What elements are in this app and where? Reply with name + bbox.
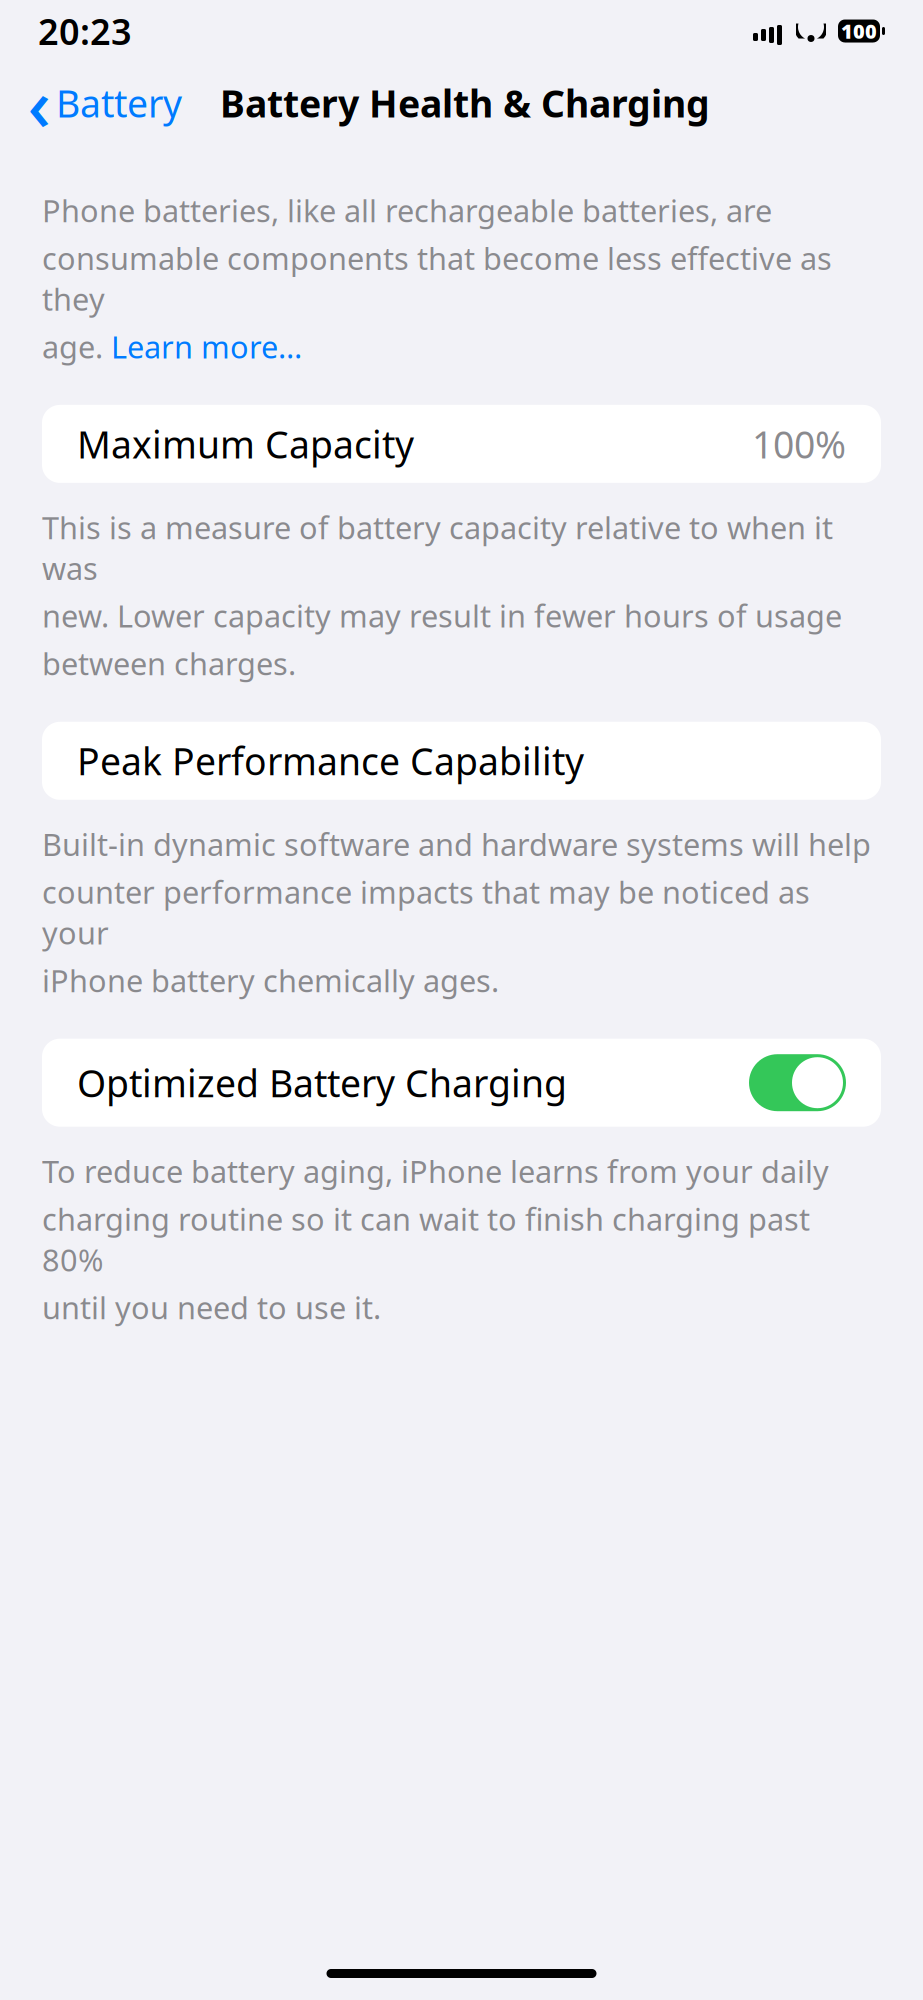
staticText: until you need to use it. — [42, 1287, 381, 1328]
staticText: To reduce battery aging, iPhone learns f… — [42, 1151, 829, 1191]
staticText: Peak Performance Capability — [77, 736, 584, 786]
staticText: Learn more… — [111, 326, 302, 367]
staticText: age. — [42, 326, 111, 367]
staticText: counter performance impacts that may be … — [42, 871, 810, 953]
staticText: iPhone battery chemically ages. — [42, 960, 499, 1001]
button[interactable]: Learn more… — [111, 326, 302, 367]
staticText: consumable components that become less e… — [42, 238, 832, 319]
staticText: Phone batteries, like all rechargeable b… — [42, 190, 772, 231]
staticText: Optimized Battery Charging — [77, 1058, 567, 1107]
staticText: new. Lower capacity may result in fewer … — [42, 595, 842, 636]
staticText: charging routine so it can wait to finis… — [42, 1198, 810, 1280]
staticText: Battery Health & Charging — [220, 78, 710, 128]
button[interactable]: ‹ — [24, 70, 186, 136]
button[interactable]: Peak Performance Capability — [0, 722, 923, 800]
staticText: Battery — [56, 78, 182, 128]
staticText: between charges. — [42, 643, 296, 684]
staticText: This is a measure of battery capacity re… — [42, 507, 833, 588]
staticText: ‹ — [27, 55, 50, 151]
staticText: Built-in dynamic software and hardware s… — [42, 824, 871, 864]
button[interactable]: Maximum Capacity — [0, 405, 923, 483]
staticText: Maximum Capacity — [77, 419, 414, 469]
staticText: 20:23 — [38, 7, 132, 55]
staticText: 100 — [841, 18, 877, 44]
button[interactable]: Optimized Battery Charging — [0, 1039, 923, 1127]
staticText: 100% — [752, 419, 846, 469]
